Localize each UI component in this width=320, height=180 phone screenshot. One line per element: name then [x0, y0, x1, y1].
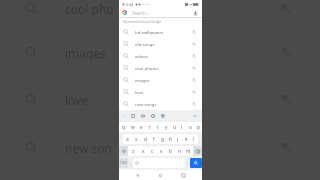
staticText: cool pho: [65, 1, 114, 16]
button[interactable]: t: [154, 122, 162, 132]
button[interactable]: new songs: [119, 98, 202, 110]
staticText: c: [151, 148, 154, 155]
staticText: love: [135, 89, 144, 95]
button[interactable]: i: [178, 122, 186, 132]
staticText: ?123: [120, 161, 127, 165]
staticText: p: [197, 124, 200, 131]
button[interactable]: love: [119, 86, 202, 98]
staticText: n: [178, 148, 181, 155]
staticText: new son: [65, 140, 112, 155]
button[interactable]: Space: [133, 158, 185, 168]
button[interactable]: v: [157, 146, 166, 156]
staticText: love: [65, 92, 88, 107]
button[interactable]: x: [138, 146, 148, 156]
staticText: b: [169, 148, 172, 155]
button[interactable]: l: [190, 134, 198, 144]
staticText: s: [135, 136, 138, 143]
button[interactable]: Shift: [119, 146, 128, 156]
staticText: k: [185, 136, 188, 143]
staticText: d: [144, 136, 147, 143]
button[interactable]: Back: [133, 171, 142, 180]
button[interactable]: o: [186, 122, 194, 132]
staticText: j: [177, 136, 179, 143]
staticText: r: [149, 124, 151, 131]
button[interactable]: g: [158, 134, 166, 144]
button[interactable]: z: [128, 146, 138, 156]
button[interactable]: a: [123, 134, 132, 144]
staticText: i: [181, 124, 183, 131]
staticText: images: [135, 77, 150, 83]
staticText: t: [157, 124, 159, 131]
staticText: m: [186, 148, 191, 155]
staticText: f: [153, 136, 155, 143]
button[interactable]: y: [162, 122, 170, 132]
staticText: y: [165, 124, 168, 131]
staticText: q: [122, 124, 125, 131]
button[interactable]: More options: [192, 113, 198, 119]
staticText: x: [142, 148, 145, 155]
staticText: new songs: [135, 101, 157, 107]
button[interactable]: Search: [190, 158, 202, 168]
staticText: u: [173, 124, 176, 131]
button[interactable]: .: [185, 158, 190, 168]
button[interactable]: u: [170, 122, 178, 132]
button[interactable]: images: [119, 74, 202, 86]
staticText: hd wallpapers: [135, 29, 164, 35]
button[interactable]: videos: [119, 50, 202, 62]
staticText: videos: [135, 53, 149, 59]
staticText: e: [140, 124, 143, 131]
button[interactable]: ,: [128, 158, 133, 168]
button[interactable]: m: [184, 146, 193, 156]
staticText: ,: [130, 160, 132, 166]
staticText: My searches from Google: [123, 20, 162, 24]
button[interactable]: n: [175, 146, 184, 156]
button[interactable]: Sticker: [140, 113, 146, 119]
button[interactable]: d: [141, 134, 150, 144]
button[interactable]: e: [137, 122, 146, 132]
staticText: Search...: [132, 10, 150, 16]
button[interactable]: Backspace: [193, 146, 202, 156]
staticText: o: [189, 124, 192, 131]
staticText: 5:34: [126, 2, 134, 7]
button[interactable]: r: [146, 122, 154, 132]
button[interactable]: w: [128, 122, 137, 132]
staticText: old songs: [135, 41, 155, 47]
staticText: l: [193, 136, 195, 143]
button[interactable]: Translate: [160, 113, 166, 119]
staticText: a: [126, 136, 129, 143]
button[interactable]: cool photos: [119, 62, 202, 74]
button[interactable]: k: [182, 134, 190, 144]
button[interactable]: Recents: [179, 171, 188, 180]
button[interactable]: j: [174, 134, 182, 144]
staticText: cool photos: [135, 65, 159, 71]
button[interactable]: Voice search: [192, 10, 198, 16]
button[interactable]: q: [119, 122, 128, 132]
staticText: g: [161, 136, 164, 143]
staticText: .: [187, 160, 189, 166]
button[interactable]: hd wallpapers: [119, 26, 202, 38]
button[interactable]: p: [194, 122, 202, 132]
staticText: h: [169, 136, 172, 143]
staticText: w: [131, 124, 135, 131]
button[interactable]: Clipboard: [130, 113, 136, 119]
button[interactable]: Previous: [121, 113, 127, 119]
staticText: z: [132, 148, 135, 155]
button[interactable]: ?123: [119, 158, 128, 168]
button[interactable]: h: [166, 134, 174, 144]
button[interactable]: s: [132, 134, 141, 144]
button[interactable]: Emoji: [150, 113, 156, 119]
staticText: images: [65, 45, 106, 60]
button[interactable]: b: [166, 146, 175, 156]
button[interactable]: c: [148, 146, 157, 156]
button[interactable]: f: [150, 134, 158, 144]
button[interactable]: old songs: [119, 38, 202, 50]
button[interactable]: Home: [156, 171, 165, 180]
staticText: v: [160, 148, 163, 155]
